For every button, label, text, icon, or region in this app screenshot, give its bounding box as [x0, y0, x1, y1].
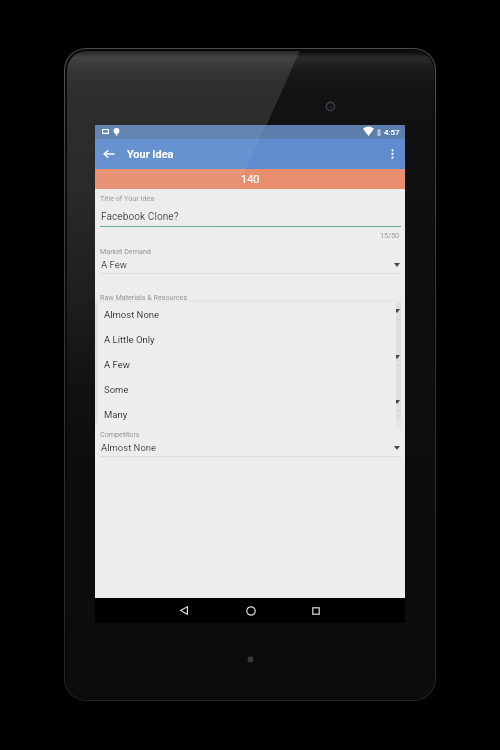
staticText: 15/50	[95, 231, 399, 239]
staticText: Some	[101, 351, 126, 362]
staticText: 4:57	[384, 128, 400, 137]
button[interactable]: Market Demand	[95, 247, 405, 274]
staticText: Raw Materials & Resources	[100, 293, 188, 301]
staticText: Title of Your Idea	[100, 194, 155, 202]
staticText: Many	[104, 409, 128, 420]
staticText: Facebook Clone?	[101, 211, 179, 223]
staticText: A Little Only	[104, 334, 155, 345]
staticText: Your Idea	[127, 148, 174, 161]
button[interactable]: More options	[379, 139, 405, 169]
staticText: Almost None	[101, 442, 157, 453]
button[interactable]: Navigate up	[95, 139, 123, 169]
staticText: 140	[241, 173, 260, 186]
staticText: A Few	[104, 359, 130, 370]
staticText: Almost None	[104, 309, 160, 320]
staticText: A Few	[101, 259, 127, 270]
button[interactable]: Some	[98, 377, 396, 402]
staticText: Industry Growth	[100, 339, 151, 347]
staticText: Market Demand	[100, 247, 151, 255]
staticText: Competitors	[100, 430, 140, 438]
button[interactable]: Competitors	[95, 430, 405, 457]
button[interactable]: Raw Materials & Resources	[95, 293, 405, 320]
button[interactable]: A Little Only	[98, 327, 396, 352]
button[interactable]: Industry Growth	[95, 339, 405, 366]
button[interactable]: Almost None	[98, 302, 396, 327]
staticText: Start-up Costs	[100, 384, 146, 392]
staticText: Some	[104, 384, 129, 395]
button[interactable]: Start-up Costs	[95, 384, 405, 411]
button[interactable]: Back	[164, 598, 204, 623]
staticText: A Few	[101, 305, 127, 316]
button[interactable]: Many	[98, 402, 396, 427]
button[interactable]: A Few	[98, 352, 396, 377]
button[interactable]: Recent apps	[296, 598, 336, 623]
button[interactable]: Home	[231, 598, 271, 623]
